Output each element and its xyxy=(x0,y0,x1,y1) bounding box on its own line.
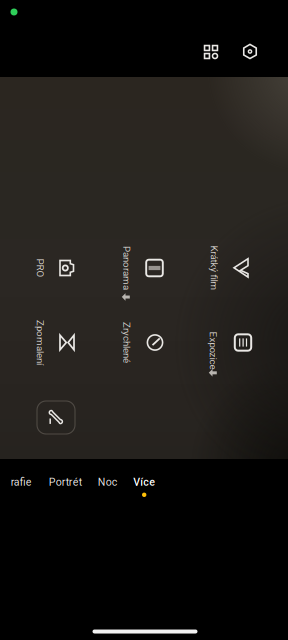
button[interactable]: Camera settings xyxy=(231,32,269,70)
button[interactable]: Zrychlené xyxy=(118,310,169,374)
button[interactable]: Více xyxy=(119,470,169,506)
staticText: Zpomalení xyxy=(17,337,62,348)
staticText: Noc xyxy=(98,476,118,488)
button[interactable]: rafie xyxy=(0,470,46,506)
staticText: Krátký film xyxy=(191,262,236,274)
button[interactable]: Portrét xyxy=(40,470,90,506)
button[interactable]: Zpomalení xyxy=(32,310,81,374)
staticText: Zrychlené xyxy=(106,337,147,348)
staticText: Portrét xyxy=(49,476,82,488)
button[interactable]: Noc xyxy=(83,470,133,506)
staticText: Panorama xyxy=(104,262,148,274)
button[interactable]: Manual settings xyxy=(37,401,75,434)
staticText: Expozice xyxy=(194,345,232,356)
button[interactable]: Camera modes xyxy=(192,33,230,71)
staticText: rafie xyxy=(11,476,32,488)
button[interactable]: Panorama xyxy=(118,236,168,300)
button[interactable]: Expozice xyxy=(205,310,257,374)
button[interactable]: PRO xyxy=(32,236,81,300)
button[interactable]: Krátký film xyxy=(206,236,255,300)
staticText: PRO xyxy=(30,262,49,274)
staticText: Více xyxy=(133,476,155,488)
